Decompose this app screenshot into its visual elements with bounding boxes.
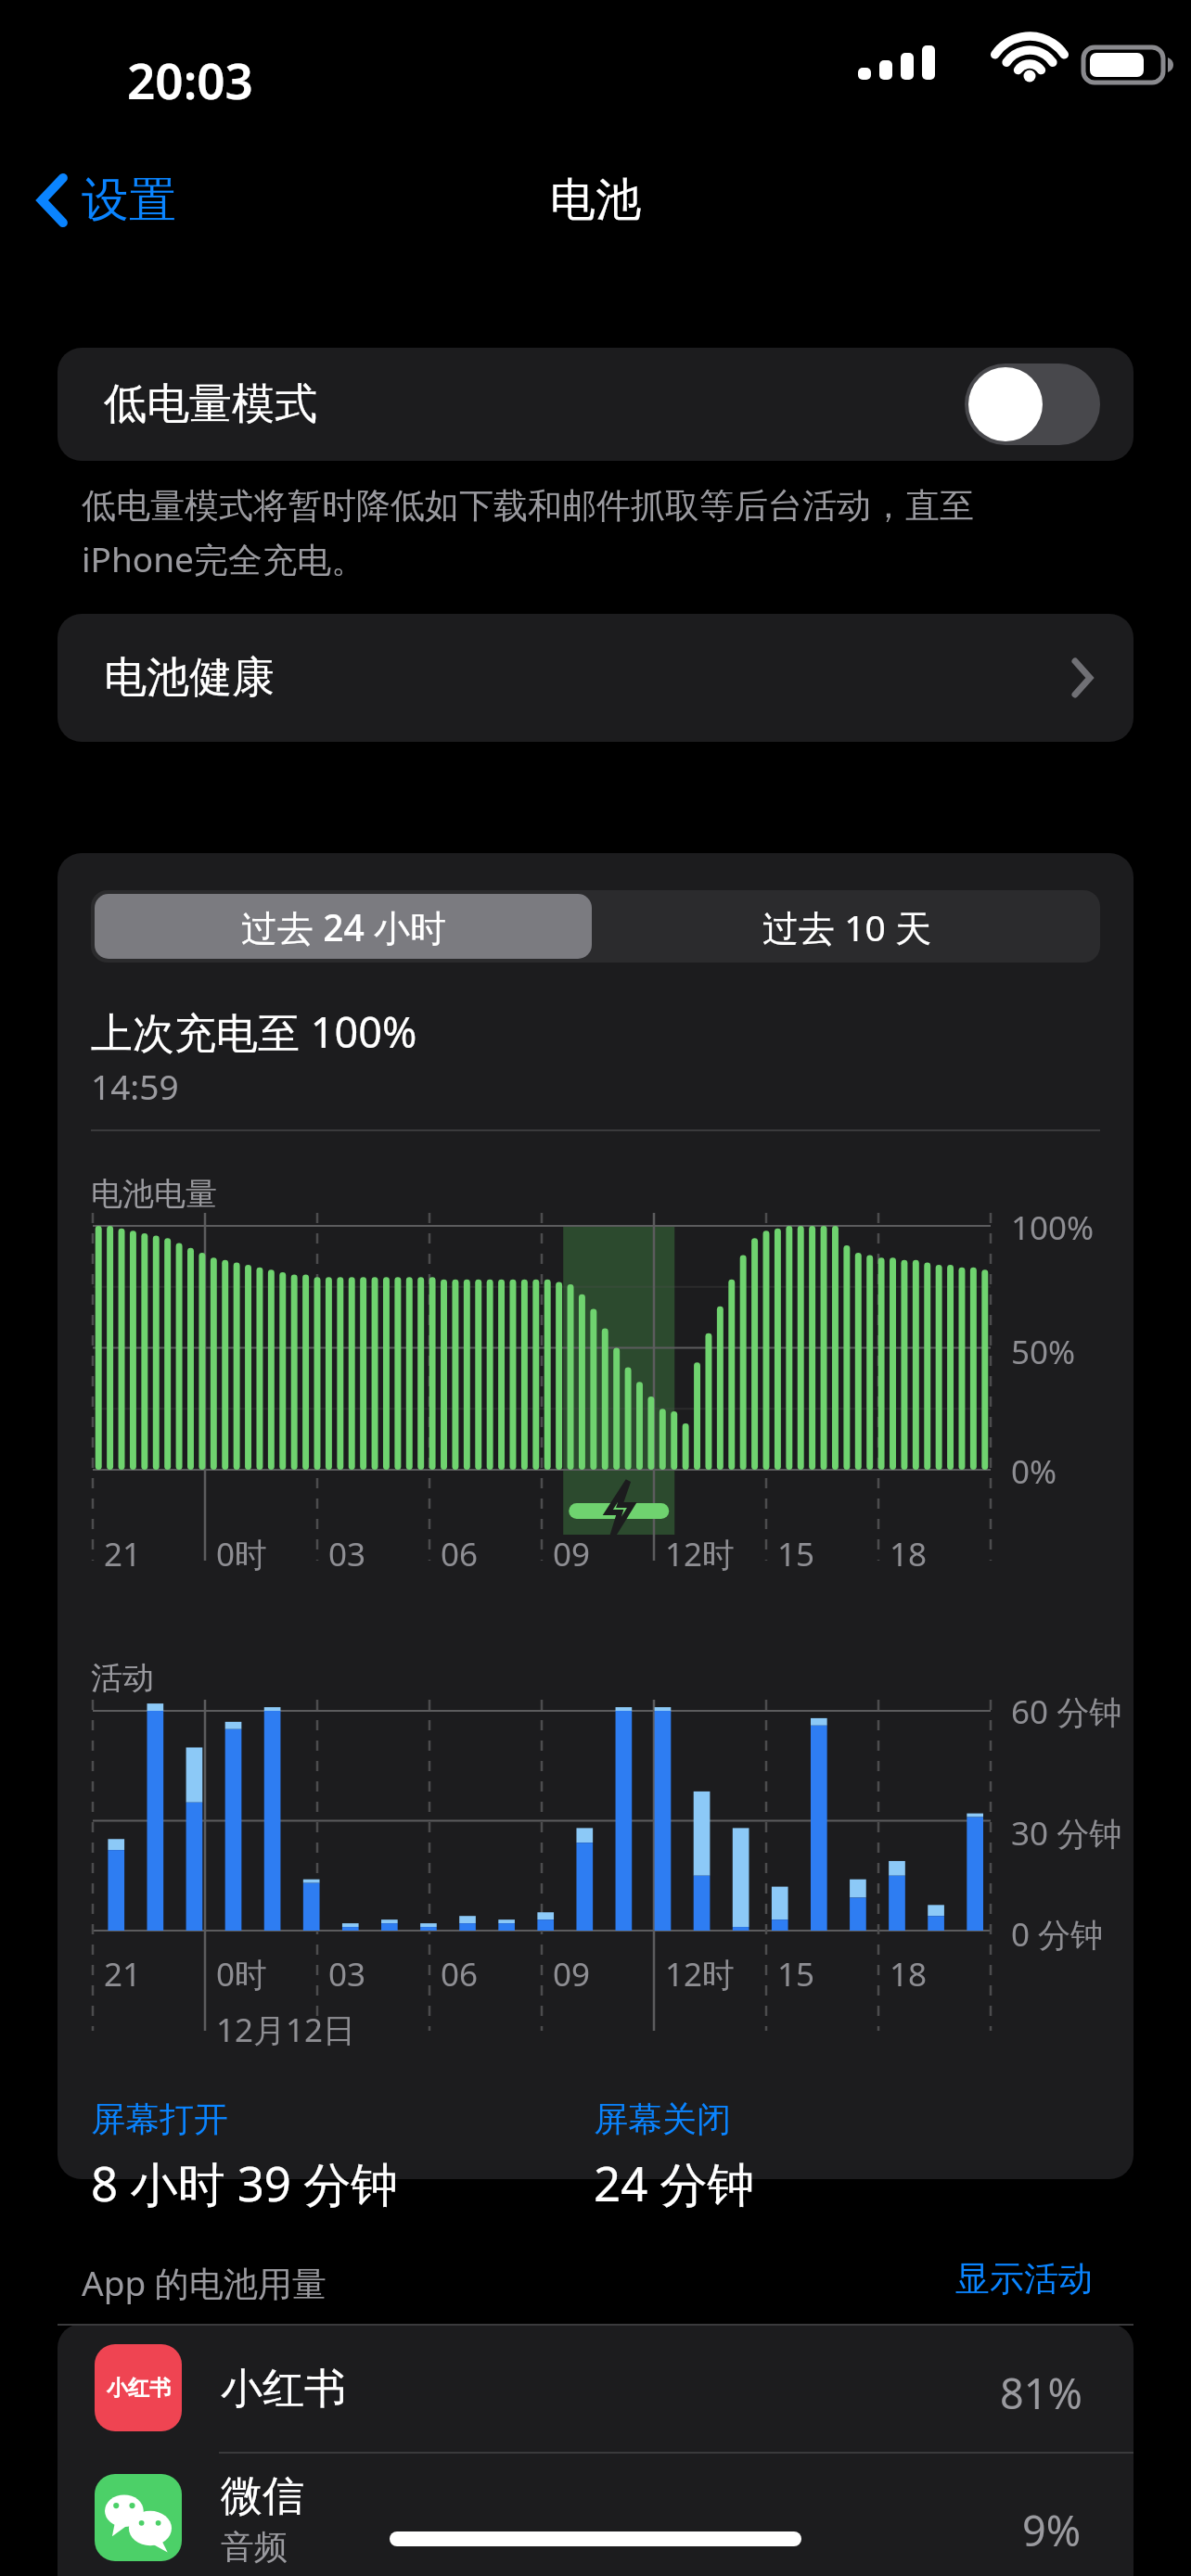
staticText: 20:03 (127, 46, 253, 113)
staticText: 过去 24 小时 (241, 902, 446, 951)
button[interactable]: 小红书 (58, 2324, 1133, 2452)
button[interactable]: Low Power Mode toggle (965, 363, 1100, 445)
staticText: 06 (441, 1952, 479, 1996)
button[interactable]: 低电量模式 (58, 348, 1133, 461)
staticText: 24 分钟 (594, 2150, 755, 2215)
staticText: 8 小时 39 分钟 (91, 2150, 399, 2215)
staticText: 小红书 (107, 2375, 171, 2402)
staticText: 12时 (665, 1532, 736, 1576)
staticText: 03 (328, 1532, 366, 1576)
staticText: 60 分钟 (1011, 1690, 1122, 1734)
staticText: 屏幕关闭 (594, 2098, 731, 2141)
staticText: 100% (1011, 1205, 1095, 1250)
staticText: 15 (777, 1532, 815, 1576)
staticText: 电池电量 (91, 1174, 217, 1214)
staticText: 14:59 (91, 1063, 179, 1109)
staticText: 18 (890, 1952, 928, 1996)
button[interactable]: 微信 (58, 2454, 1133, 2576)
staticText: 电池健康 (104, 651, 275, 705)
staticText: 21 (104, 1952, 142, 1996)
button[interactable]: 过去 10 天 (597, 894, 1096, 959)
button[interactable]: 过去 24 小时 (95, 894, 592, 959)
staticText: 9% (1022, 2502, 1082, 2558)
staticText: iPhone完全充电。 (82, 535, 365, 582)
staticText: 屏幕打开 (91, 2098, 228, 2141)
staticText: 音频 (221, 2526, 288, 2568)
staticText: 上次充电至 100% (91, 1003, 417, 1060)
staticText: 微信 (221, 2470, 304, 2523)
button[interactable]: 电池健康 (58, 614, 1133, 742)
staticText: 50% (1011, 1330, 1076, 1374)
staticText: 12月12日 (216, 2008, 356, 2052)
staticText: 09 (553, 1952, 591, 1996)
staticText: 18 (890, 1532, 928, 1576)
staticText: 电池 (550, 172, 641, 229)
staticText: 低电量模式将暂时降低如下载和邮件抓取等后台活动，直至 (82, 484, 974, 528)
staticText: 显示活动 (955, 2257, 1093, 2301)
staticText: 15 (777, 1952, 815, 1996)
staticText: 设置 (82, 171, 176, 230)
staticText: 09 (553, 1532, 591, 1576)
staticText: 03 (328, 1952, 366, 1996)
button[interactable]: 显示活动 (950, 2251, 1098, 2306)
staticText: 12时 (665, 1952, 736, 1996)
staticText: 小红书 (221, 2363, 346, 2416)
staticText: 0 分钟 (1011, 1912, 1104, 1957)
staticText: 低电量模式 (104, 377, 317, 431)
staticText: 21 (104, 1532, 142, 1576)
staticText: 30 分钟 (1011, 1811, 1122, 1855)
staticText: 06 (441, 1532, 479, 1576)
staticText: App 的电池用量 (82, 2259, 327, 2306)
staticText: 0% (1011, 1449, 1057, 1494)
button[interactable]: 设置 (28, 158, 186, 243)
staticText: 0时 (216, 1952, 268, 1996)
staticText: 81% (1000, 2365, 1082, 2421)
staticText: 活动 (91, 1658, 154, 1698)
staticText: 过去 10 天 (762, 902, 931, 951)
staticText: 0时 (216, 1532, 268, 1576)
